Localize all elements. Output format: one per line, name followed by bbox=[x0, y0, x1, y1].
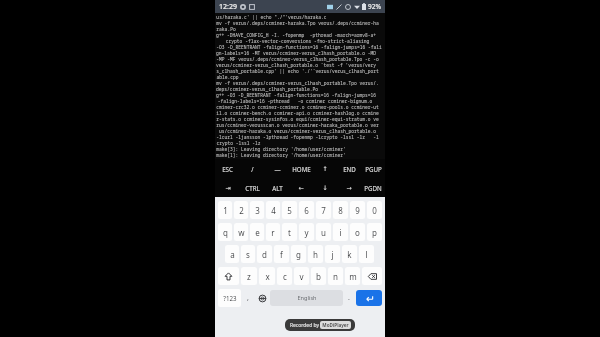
button[interactable]: — bbox=[265, 159, 289, 178]
button[interactable]: 2 bbox=[234, 201, 248, 219]
button[interactable]: r bbox=[266, 223, 280, 241]
button[interactable]: PGUP bbox=[361, 159, 385, 178]
button[interactable]: x bbox=[259, 267, 275, 285]
button[interactable]: o bbox=[350, 223, 365, 241]
button[interactable]: p bbox=[367, 223, 382, 241]
button[interactable]: 4 bbox=[266, 201, 280, 219]
staticText: cminer-crc32.o ccminer-ccminer.o ccminer… bbox=[216, 104, 379, 110]
staticText: g++ -DHAVE_CONFIG_H -I. -fopenmp -pthrea… bbox=[216, 32, 376, 38]
button[interactable]: Enter bbox=[356, 290, 382, 306]
staticText: ESC bbox=[222, 165, 233, 173]
staticText: Recorded by bbox=[289, 322, 320, 329]
button[interactable]: 3 bbox=[250, 201, 264, 219]
button[interactable]: ALT bbox=[265, 178, 289, 197]
button[interactable]: 8 bbox=[333, 201, 348, 219]
staticText: w bbox=[238, 227, 245, 238]
staticText: make[3]: Leaving directory '/home/user/c… bbox=[216, 146, 346, 152]
button[interactable]: l bbox=[359, 245, 374, 263]
button[interactable]: y bbox=[299, 223, 314, 241]
staticText: ↑ bbox=[322, 165, 328, 172]
button[interactable]: ← bbox=[289, 178, 313, 197]
staticText: verus/ccminer-verus_clhash_portable.o `t… bbox=[216, 62, 376, 68]
staticText: -falign-labels=16 -pthread -o ccminer cc… bbox=[216, 98, 374, 104]
button[interactable]: HOME bbox=[289, 159, 313, 178]
staticText: → bbox=[346, 184, 352, 191]
button[interactable]: u bbox=[316, 223, 331, 241]
staticText: z bbox=[247, 271, 251, 282]
staticText: -MP -MF verus/.deps/ccminer-verus_clhash… bbox=[216, 56, 379, 62]
staticText: h bbox=[313, 249, 318, 260]
staticText: 0 bbox=[372, 205, 377, 216]
button[interactable]: 5 bbox=[282, 201, 297, 219]
button[interactable]: ↓ bbox=[313, 178, 337, 197]
staticText: PGUP bbox=[365, 165, 382, 173]
staticText: s bbox=[246, 249, 250, 260]
staticText: make[1]: Leaving directory '/home/user/c… bbox=[216, 152, 346, 158]
staticText: r bbox=[271, 227, 275, 238]
staticText: 4 bbox=[271, 205, 276, 216]
button[interactable]: j bbox=[325, 245, 340, 263]
staticText: 12:29 bbox=[219, 2, 237, 12]
button[interactable]: 7 bbox=[316, 201, 331, 219]
button[interactable]: f bbox=[274, 245, 289, 263]
button[interactable]: 9 bbox=[350, 201, 365, 219]
button[interactable]: English bbox=[270, 290, 343, 306]
staticText: g++ -O3 -D_REENTRANT -falign-functions=1… bbox=[216, 92, 376, 98]
staticText: d bbox=[262, 249, 267, 260]
button[interactable]: 1 bbox=[218, 201, 232, 219]
staticText: x bbox=[265, 271, 270, 282]
button[interactable]: q bbox=[218, 223, 232, 241]
button[interactable]: , bbox=[242, 287, 254, 309]
staticText: b bbox=[316, 271, 321, 282]
staticText: deps/ccminer-verus_clhash_portable.Po bbox=[216, 86, 318, 92]
staticText: 9 bbox=[355, 205, 360, 216]
button[interactable]: Shift bbox=[218, 267, 239, 285]
button[interactable]: Backspace bbox=[362, 267, 382, 285]
button[interactable]: c bbox=[277, 267, 292, 285]
button[interactable]: 6 bbox=[299, 201, 314, 219]
button[interactable]: m bbox=[345, 267, 360, 285]
button[interactable]: h bbox=[308, 245, 323, 263]
staticText: m bbox=[349, 271, 357, 282]
staticText: mv -f verus/.deps/ccminer-verus_clhash_p… bbox=[216, 80, 379, 86]
button[interactable]: b bbox=[311, 267, 326, 285]
button[interactable]: n bbox=[328, 267, 343, 285]
button[interactable]: . bbox=[343, 287, 355, 309]
staticText: ← bbox=[298, 184, 304, 191]
staticText: 6 bbox=[304, 205, 309, 216]
button[interactable]: g bbox=[291, 245, 306, 263]
button[interactable]: v bbox=[294, 267, 309, 285]
staticText: CTRL bbox=[245, 184, 260, 192]
button[interactable]: PGDN bbox=[361, 178, 385, 197]
button[interactable]: d bbox=[257, 245, 272, 263]
button[interactable]: z bbox=[241, 267, 257, 285]
staticText: 5 bbox=[287, 205, 292, 216]
staticText: a bbox=[230, 249, 235, 260]
staticText: g bbox=[296, 249, 301, 260]
button[interactable]: t bbox=[282, 223, 297, 241]
button[interactable]: ESC bbox=[215, 159, 240, 178]
button[interactable]: → bbox=[337, 178, 361, 197]
button[interactable]: a bbox=[225, 245, 239, 263]
button[interactable]: END bbox=[337, 159, 361, 178]
staticText: f bbox=[280, 249, 283, 260]
button[interactable]: ⇥ bbox=[215, 178, 240, 197]
button[interactable]: ?123 bbox=[218, 289, 241, 307]
button[interactable]: ↑ bbox=[313, 159, 337, 178]
button[interactable]: i bbox=[333, 223, 348, 241]
button[interactable]: s bbox=[241, 245, 255, 263]
button[interactable]: e bbox=[250, 223, 264, 241]
button[interactable]: Change keyboard language bbox=[255, 289, 269, 307]
staticText: c bbox=[283, 271, 287, 282]
button[interactable]: w bbox=[234, 223, 248, 241]
staticText: t bbox=[288, 227, 291, 238]
button[interactable]: 0 bbox=[367, 201, 382, 219]
staticText: / bbox=[251, 165, 254, 173]
button[interactable]: / bbox=[240, 159, 265, 178]
button[interactable]: CTRL bbox=[240, 178, 265, 197]
staticText: il.o ccminer-bench.o ccminer-api.o ccmin… bbox=[216, 110, 379, 116]
staticText: 2 bbox=[239, 205, 244, 216]
button[interactable]: k bbox=[342, 245, 357, 263]
